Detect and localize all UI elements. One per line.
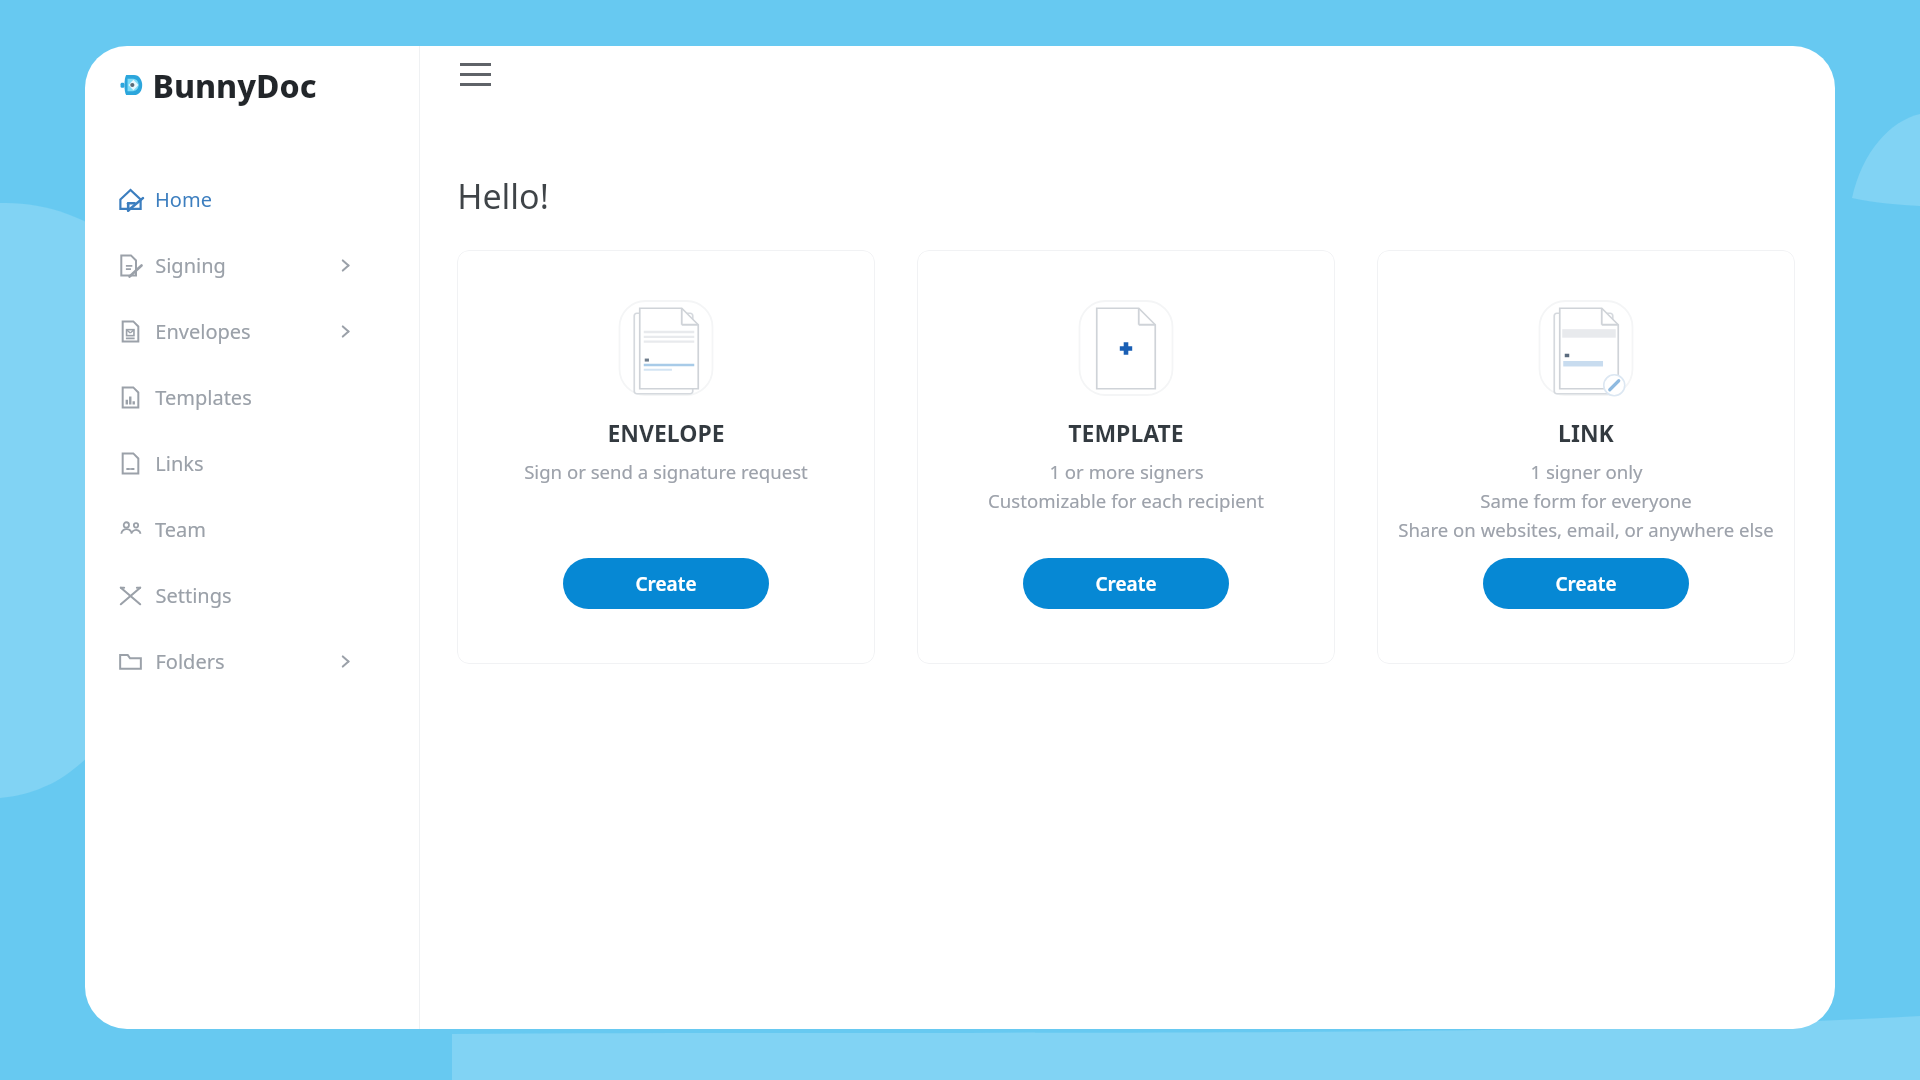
staticText: Same form for everyone: [1480, 488, 1692, 513]
staticText: Folders: [155, 648, 225, 675]
button[interactable]: Create: [1023, 558, 1229, 609]
staticText: ENVELOPE: [607, 417, 725, 448]
staticText: BunnyDoc: [152, 64, 317, 106]
staticText: TEMPLATE: [1068, 417, 1184, 448]
staticText: 1 signer only: [1530, 459, 1643, 484]
staticText: 1 or more signers: [1049, 459, 1204, 484]
staticText: Links: [155, 450, 204, 477]
button[interactable]: Settings: [85, 562, 419, 628]
button[interactable]: Folders: [85, 628, 419, 694]
button[interactable]: Create: [1483, 558, 1689, 609]
staticText: LINK: [1558, 417, 1614, 448]
button[interactable]: Create: [563, 558, 769, 609]
staticText: Share on websites, email, or anywhere el…: [1398, 517, 1774, 542]
staticText: Sign or send a signature request: [524, 459, 808, 484]
staticText: Hello!: [457, 173, 549, 219]
staticText: Templates: [155, 384, 252, 411]
button[interactable]: ENVELOPE: [457, 250, 875, 664]
staticText: Signing: [155, 252, 226, 279]
button[interactable]: Home: [85, 166, 419, 232]
staticText: Team: [155, 516, 206, 543]
staticText: Create: [1095, 571, 1157, 597]
button[interactable]: Menu: [447, 46, 503, 102]
staticText: Create: [635, 571, 697, 597]
button[interactable]: Links: [85, 430, 419, 496]
staticText: Customizable for each recipient: [988, 488, 1264, 513]
staticText: Home: [155, 186, 212, 213]
button[interactable]: TEMPLATE: [917, 250, 1335, 664]
button[interactable]: Team: [85, 496, 419, 562]
button[interactable]: Envelopes: [85, 298, 419, 364]
button[interactable]: Templates: [85, 364, 419, 430]
staticText: Settings: [155, 582, 232, 609]
button[interactable]: LINK: [1377, 250, 1795, 664]
staticText: Envelopes: [155, 318, 251, 345]
staticText: Create: [1555, 571, 1617, 597]
button[interactable]: Signing: [85, 232, 419, 298]
